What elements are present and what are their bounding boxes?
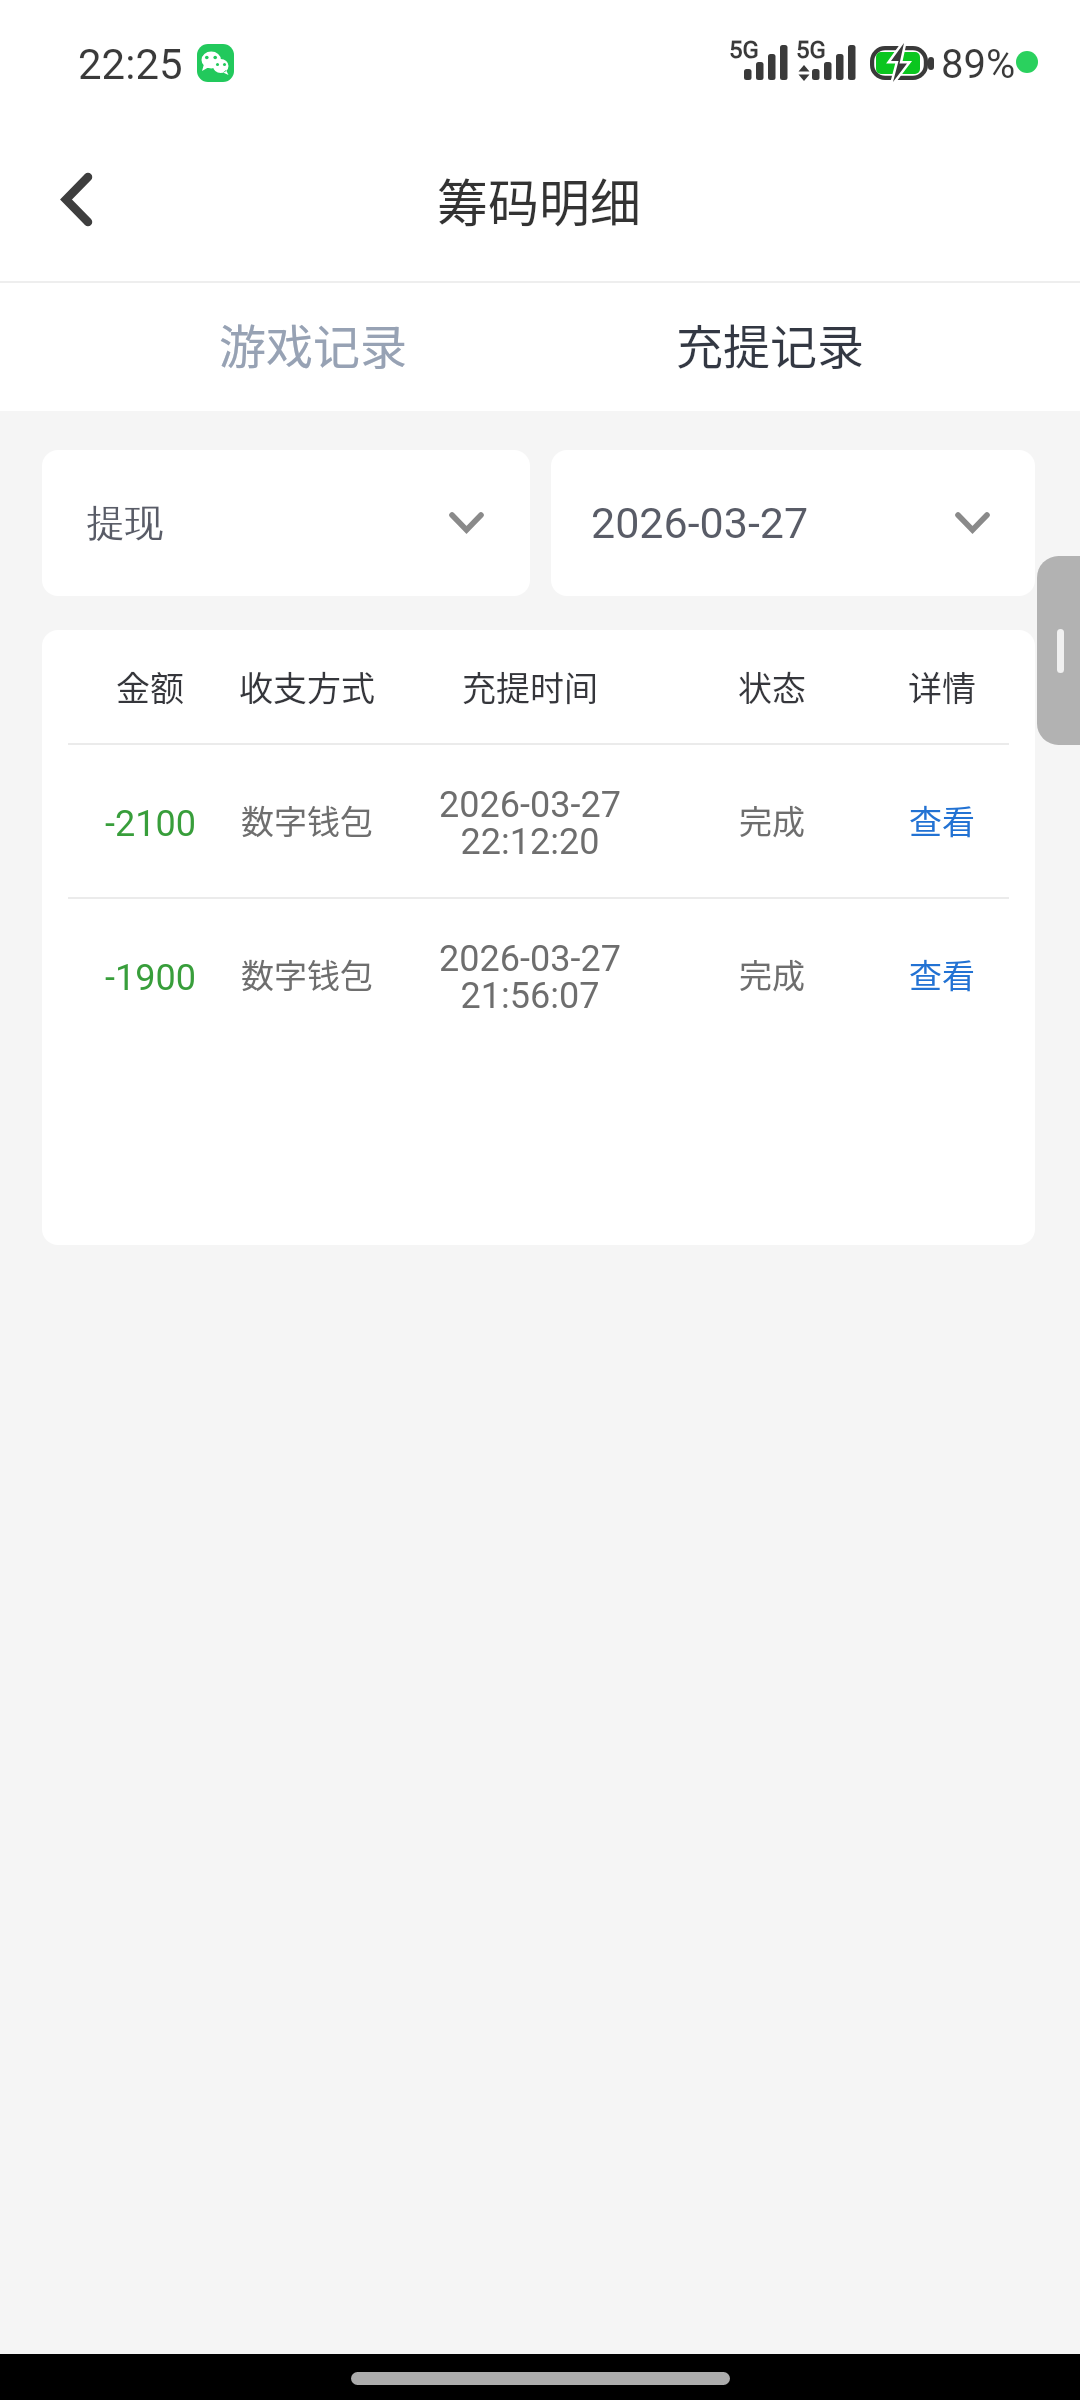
staticText: 收支方式 [239, 662, 375, 711]
button[interactable]: Back [22, 153, 106, 237]
staticText: 状态 [738, 662, 806, 711]
staticText: 查看 [909, 950, 975, 998]
staticText: 数字钱包 [241, 950, 373, 998]
staticText: 详情 [908, 662, 976, 711]
staticText: -2100 [105, 803, 196, 845]
staticText: 5G [796, 36, 826, 64]
button[interactable]: 查看 [822, 897, 1035, 1051]
staticText: 筹码明细 [437, 163, 642, 237]
button[interactable]: 游戏记录 [130, 279, 496, 406]
button[interactable]: 2026-03-27 [551, 450, 1035, 596]
staticText: 查看 [909, 796, 975, 844]
staticText: 充提记录 [676, 309, 864, 377]
staticText: -1900 [105, 957, 196, 999]
button[interactable]: 提现 [42, 450, 530, 596]
staticText: 金额 [116, 662, 184, 711]
staticText: 2026-03-27 21:56:07 [439, 938, 621, 1016]
staticText: 2026-03-27 22:12:20 [439, 784, 621, 862]
staticText: 数字钱包 [241, 796, 373, 844]
staticText: 完成 [739, 950, 805, 998]
button[interactable]: 查看 [822, 743, 1035, 897]
button[interactable]: 充提记录 [587, 279, 953, 406]
staticText: 89% [941, 41, 1016, 88]
staticText: 22:25 [78, 40, 183, 89]
staticText: 5G [729, 36, 759, 64]
staticText: 充提时间 [462, 662, 598, 711]
staticText: 提现 [87, 499, 163, 547]
staticText: 游戏记录 [219, 309, 407, 377]
staticText: 2026-03-27 [591, 498, 809, 548]
staticText: 完成 [739, 796, 805, 844]
